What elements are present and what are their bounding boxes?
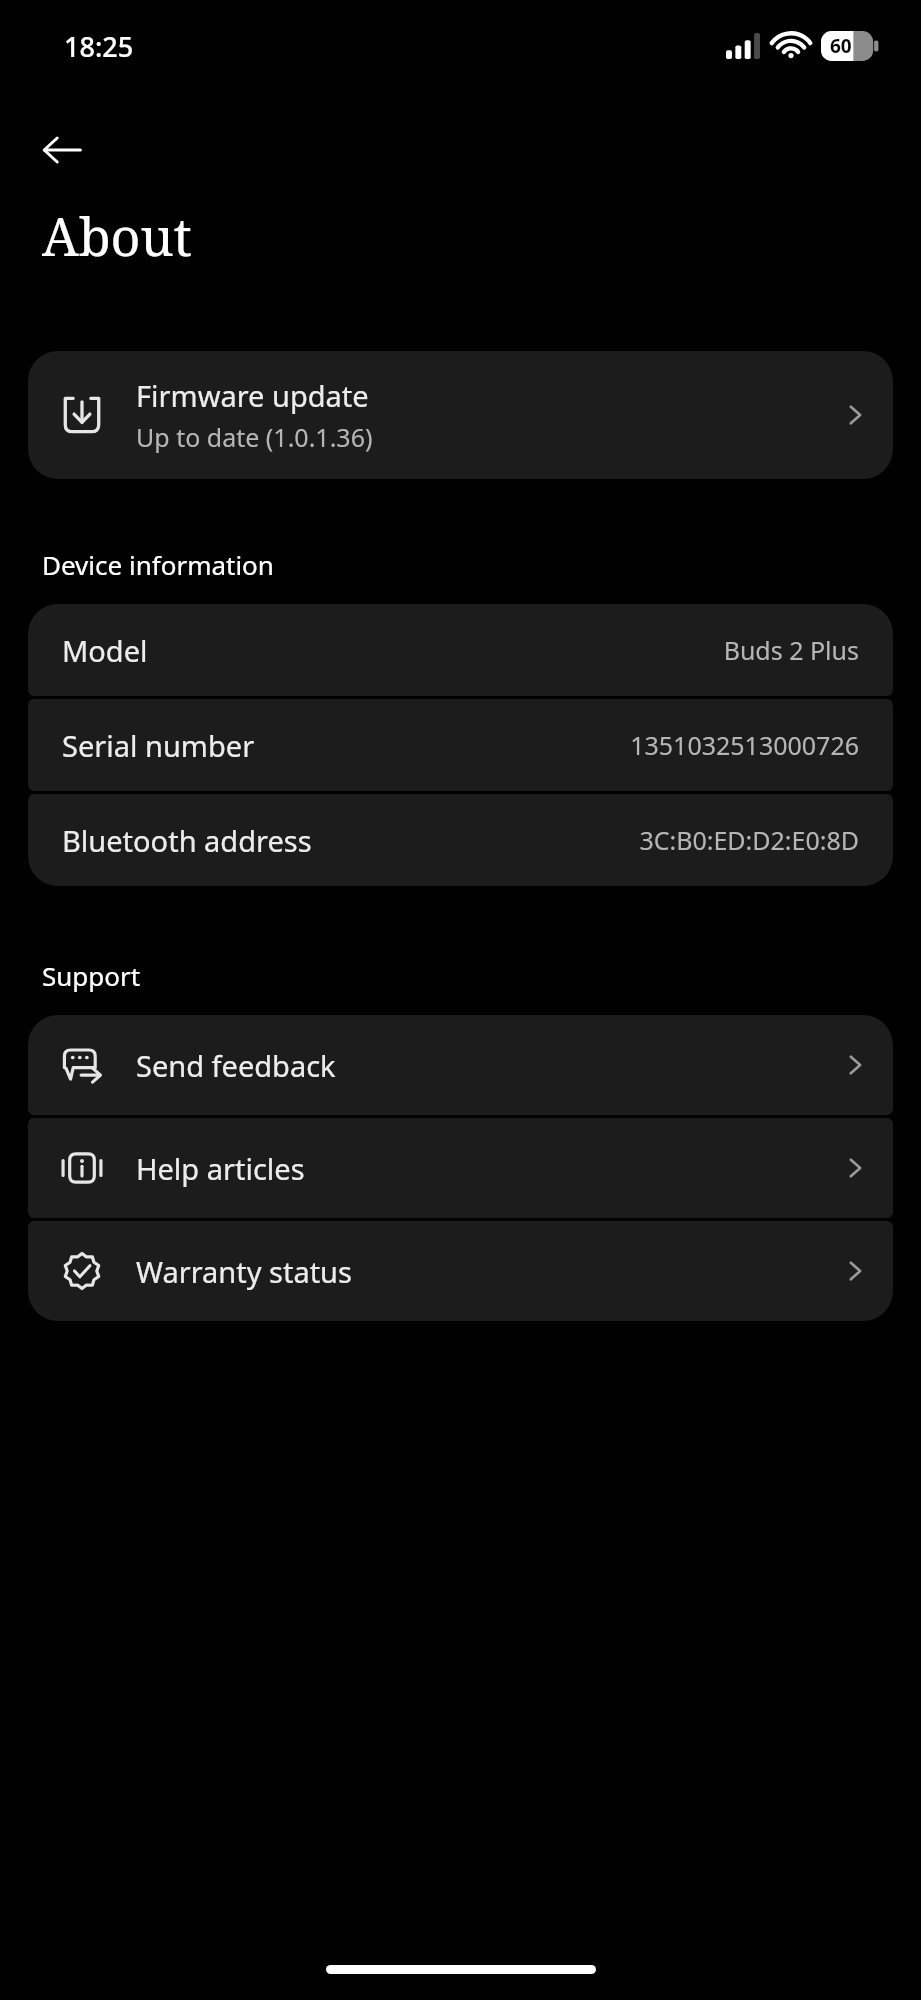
button[interactable]: Back [26,114,98,186]
staticText: 1351032513000726 [630,728,859,762]
button[interactable]: Warranty status [28,1221,893,1321]
staticText: Send feedback [136,1046,843,1085]
button[interactable]: Send feedback [28,1015,893,1115]
staticText: 18:25 [64,28,134,65]
staticText: 3C:B0:ED:D2:E0:8D [639,823,859,857]
staticText: Support [42,958,141,993]
staticText: Serial number [62,726,255,765]
staticText: About [42,200,192,271]
staticText: Help articles [136,1149,843,1188]
staticText: Model [62,631,148,670]
staticText: 60 [830,33,852,59]
button[interactable]: Serial number [28,699,893,791]
button[interactable]: Bluetooth address [28,794,893,886]
button[interactable]: Help articles [28,1118,893,1218]
staticText: Bluetooth address [62,821,312,860]
staticText: Buds 2 Plus [723,633,859,667]
staticText: Firmware update [136,376,369,415]
staticText: Device information [42,547,274,582]
staticText: Up to date (1.0.1.36) [136,420,373,454]
button[interactable]: Model [28,604,893,696]
staticText: Warranty status [136,1252,843,1291]
button[interactable]: Firmware update [28,351,893,479]
